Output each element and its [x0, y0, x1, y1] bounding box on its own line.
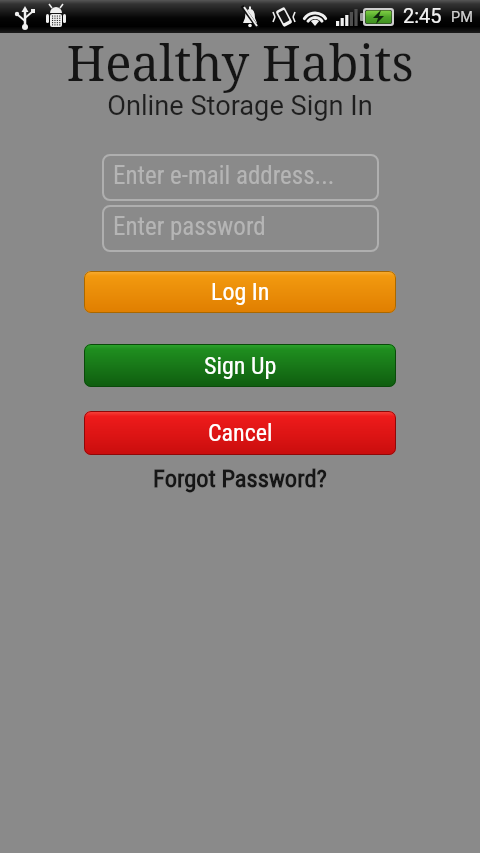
- staticText: Cancel: [208, 419, 273, 447]
- button[interactable]: Enter password: [102, 205, 379, 252]
- button[interactable]: Forgot Password?: [153, 464, 327, 493]
- staticText: Enter password: [113, 212, 266, 241]
- button[interactable]: Sign Up: [84, 344, 396, 387]
- staticText: 2:45: [403, 4, 442, 27]
- button[interactable]: Enter e-mail address...: [102, 154, 379, 201]
- staticText: PM: [451, 9, 473, 26]
- staticText: Sign Up: [204, 352, 277, 380]
- button[interactable]: Cancel: [84, 411, 396, 455]
- staticText: Healthy Habits: [66, 29, 414, 96]
- staticText: Online Storage Sign In: [107, 90, 373, 122]
- staticText: Log In: [211, 278, 270, 306]
- staticText: Enter e-mail address...: [113, 161, 335, 190]
- button[interactable]: Log In: [84, 271, 396, 313]
